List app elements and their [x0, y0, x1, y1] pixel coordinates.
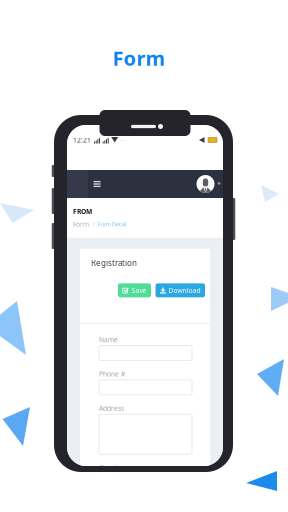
staticText: 12:21 — [73, 136, 91, 144]
staticText: FROM — [73, 207, 92, 216]
button[interactable]: Save — [118, 283, 151, 297]
button[interactable]: Download — [155, 283, 205, 297]
staticText: Phone # — [99, 369, 125, 378]
staticText: Address — [99, 404, 124, 413]
button[interactable]: Account — [196, 175, 214, 193]
staticText: Form — [73, 220, 89, 229]
staticText: Gender — [99, 463, 123, 472]
staticText: ·· — [121, 136, 125, 144]
staticText: Form Detail — [98, 221, 126, 228]
staticText: Form — [112, 45, 165, 71]
staticText: Name — [99, 335, 118, 344]
staticText: Save — [131, 286, 146, 295]
staticText: Registration — [91, 258, 137, 268]
staticText: / — [92, 220, 94, 229]
button[interactable]: Menu — [91, 178, 103, 190]
staticText: Download — [168, 286, 200, 295]
